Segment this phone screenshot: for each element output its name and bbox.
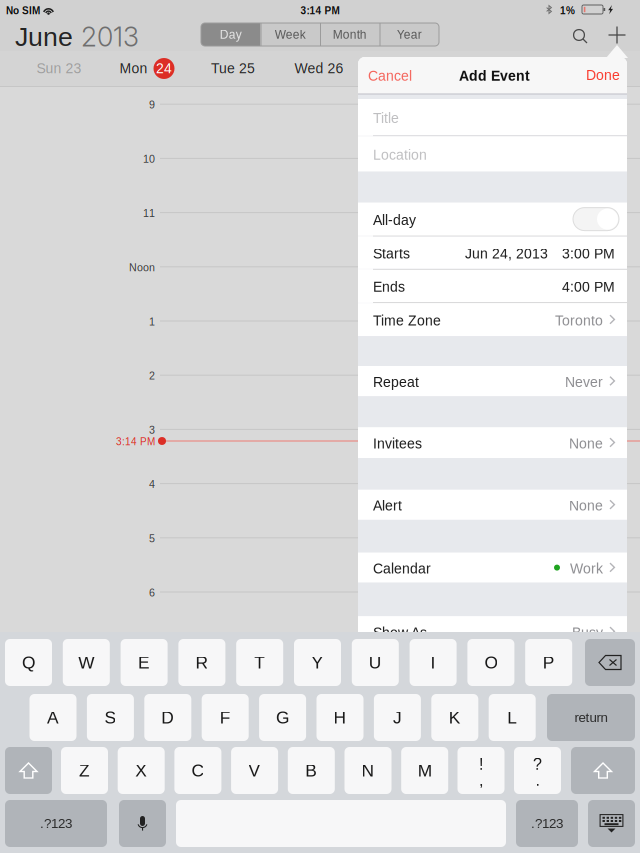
button[interactable]: Show As (358, 616, 627, 647)
staticText: Q (22, 653, 35, 672)
staticText: Noon (129, 262, 155, 273)
button[interactable]: ? (514, 747, 561, 794)
staticText: M (418, 761, 432, 780)
button[interactable]: Shift (571, 747, 635, 794)
button[interactable]: Done (577, 57, 629, 93)
button[interactable]: T (236, 639, 283, 686)
button[interactable]: O (467, 639, 514, 686)
button[interactable]: Tue 25 (190, 51, 276, 86)
staticText: V (249, 761, 261, 780)
staticText: Done (586, 67, 620, 83)
staticText: 4:00 PM (562, 279, 615, 295)
button[interactable]: ! (457, 747, 504, 794)
staticText: Sun 23 (36, 61, 81, 76)
button[interactable]: F (202, 694, 249, 741)
staticText: Year (397, 28, 422, 41)
staticText: W (78, 653, 94, 672)
staticText: P (543, 653, 555, 672)
button[interactable]: Week (260, 23, 320, 46)
staticText: 5 (149, 533, 155, 544)
button[interactable]: Repeat (358, 366, 627, 396)
button[interactable]: E (121, 639, 168, 686)
button[interactable]: Invitees (358, 427, 627, 458)
button[interactable]: Month (320, 23, 379, 46)
button[interactable]: I (410, 639, 457, 686)
button[interactable]: H (316, 694, 363, 741)
staticText: 6 (149, 587, 155, 599)
button[interactable]: Year (379, 23, 439, 46)
button[interactable]: U (352, 639, 399, 686)
staticText: N (361, 761, 374, 780)
button[interactable]: A (29, 694, 76, 741)
button[interactable]: Sun 23 (16, 51, 102, 86)
staticText: ? (533, 755, 542, 773)
button[interactable]: B (288, 747, 335, 794)
button[interactable]: Hide keyboard (588, 800, 635, 847)
button[interactable]: Title (358, 99, 627, 135)
button[interactable]: L (489, 694, 536, 741)
staticText: .?123 (531, 816, 563, 831)
button[interactable]: Q (5, 639, 52, 686)
button[interactable]: X (118, 747, 165, 794)
staticText: X (135, 761, 147, 780)
button[interactable]: Time Zone (358, 303, 627, 336)
staticText: . (535, 771, 539, 789)
staticText: Location (373, 147, 427, 163)
staticText: , (479, 771, 483, 789)
staticText: Repeat (373, 374, 419, 390)
button[interactable]: .?123 (5, 800, 107, 847)
button[interactable]: D (144, 694, 191, 741)
button[interactable]: N (344, 747, 391, 794)
button[interactable]: Search (564, 20, 594, 50)
button[interactable]: Add event (602, 20, 632, 50)
button[interactable]: M (401, 747, 448, 794)
button[interactable]: G (259, 694, 306, 741)
staticText: Jun 24, 2013 (465, 246, 548, 261)
button[interactable]: Dictation (119, 800, 166, 847)
button[interactable]: .?123 (516, 800, 578, 847)
button[interactable]: Z (61, 747, 108, 794)
button[interactable]: W (63, 639, 110, 686)
button[interactable]: Shift (5, 747, 52, 794)
button[interactable]: Wed 26 (276, 51, 362, 86)
staticText: No SIM (6, 5, 40, 16)
button[interactable]: S (87, 694, 134, 741)
button[interactable]: J (374, 694, 421, 741)
button[interactable]: P (525, 639, 572, 686)
staticText: Starts (373, 246, 410, 261)
staticText: 10 (143, 153, 155, 165)
staticText: S (104, 708, 116, 727)
staticText: .?123 (40, 816, 72, 831)
staticText: Time Zone (373, 313, 441, 328)
button[interactable]: Alert (358, 490, 627, 520)
button[interactable]: Day (201, 23, 260, 46)
staticText: Calendar (373, 561, 431, 576)
staticText: Day (220, 28, 242, 41)
staticText: 3:14 PM (116, 436, 155, 447)
staticText: K (449, 708, 461, 727)
staticText: D (161, 708, 174, 727)
button[interactable]: Starts (358, 237, 627, 269)
staticText: L (507, 708, 517, 727)
staticText: C (191, 761, 204, 780)
button[interactable]: K (431, 694, 478, 741)
staticText: None (569, 436, 603, 451)
button[interactable]: return (547, 694, 635, 741)
button[interactable]: Delete (585, 639, 635, 686)
button[interactable]: Cancel (358, 57, 420, 93)
button[interactable]: All-day (358, 202, 627, 236)
button[interactable]: Ends (358, 270, 627, 302)
button[interactable]: Calendar (358, 552, 627, 583)
button[interactable]: Location (358, 136, 627, 172)
staticText: G (276, 708, 289, 727)
staticText: 9 (149, 99, 155, 111)
button[interactable]: C (174, 747, 221, 794)
button[interactable]: V (231, 747, 278, 794)
button[interactable]: Mon (104, 51, 190, 86)
staticText: Show As (373, 625, 427, 640)
button[interactable]: R (178, 639, 225, 686)
staticText: Alert (373, 498, 402, 513)
staticText: ! (479, 755, 483, 773)
button[interactable]: Y (294, 639, 341, 686)
